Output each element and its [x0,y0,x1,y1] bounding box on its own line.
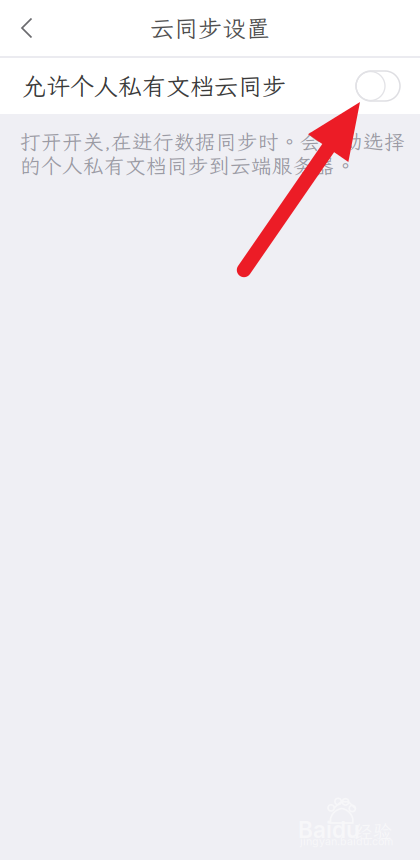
staticText: 云同步设置 [150,12,270,44]
staticText: 打开开关,在进行数据同步时。会自动选择的个人私有文档同步到云端服务器。 [20,128,405,179]
button[interactable]: 允许个人私有文档云同步 [0,58,420,114]
staticText: 允许个人私有文档云同步 [22,70,286,102]
staticText: Baidu [298,816,360,843]
button[interactable]: Back [0,0,54,56]
